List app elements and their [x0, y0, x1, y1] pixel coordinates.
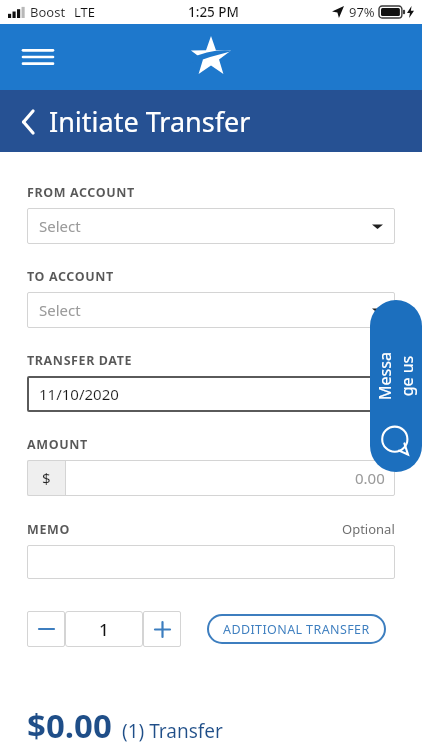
staticText: TRANSFER DATE	[27, 352, 133, 369]
staticText: FROM ACCOUNT	[27, 184, 135, 201]
button[interactable]: Decrease	[27, 611, 65, 647]
button[interactable]: 1	[65, 611, 143, 647]
staticText: 0.00	[355, 468, 385, 488]
staticText: 11/10/2020	[39, 384, 119, 404]
staticText: (1) Transfer	[122, 718, 223, 744]
button[interactable]	[27, 545, 395, 579]
button[interactable]: Select	[27, 292, 395, 328]
button[interactable]: $	[27, 460, 395, 496]
staticText: Select	[39, 300, 81, 320]
staticText: Select	[39, 216, 81, 236]
staticText: Optional	[342, 520, 395, 538]
button[interactable]: 11/10/2020	[27, 376, 395, 412]
staticText: 1	[99, 618, 109, 641]
staticText: AMOUNT	[27, 436, 88, 453]
staticText: 1:25 PM	[188, 3, 239, 21]
staticText: TO ACCOUNT	[27, 268, 114, 285]
staticText: MEMO	[27, 521, 70, 538]
button[interactable]: Increase	[143, 611, 181, 647]
staticText: 97%	[349, 3, 375, 21]
staticText: Initiate Transfer	[49, 103, 251, 140]
button[interactable]: Select	[27, 208, 395, 244]
staticText: Message us	[374, 350, 418, 402]
button[interactable]: Menu	[18, 37, 58, 77]
other: Logo	[189, 35, 233, 79]
staticText: $	[42, 468, 51, 488]
staticText: ADDITIONAL TRANSFER	[223, 621, 370, 638]
button[interactable]: Message us	[370, 300, 422, 472]
staticText: $0.00	[27, 703, 112, 748]
button[interactable]: Initiate Transfer	[0, 90, 422, 152]
button[interactable]: ADDITIONAL TRANSFER	[207, 614, 386, 644]
staticText: LTE	[74, 3, 96, 21]
staticText: Boost	[30, 3, 66, 21]
